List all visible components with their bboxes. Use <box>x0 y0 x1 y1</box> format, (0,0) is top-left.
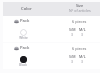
staticText: 3 <box>71 59 73 64</box>
staticText: 3 <box>71 32 73 37</box>
staticText: S/M <box>69 54 76 59</box>
staticText: 3 <box>81 32 83 37</box>
staticText: Color <box>21 6 32 12</box>
staticText: 6 pieces <box>72 46 87 51</box>
staticText: M/L <box>79 54 86 59</box>
button[interactable]: Pack <box>3 16 100 42</box>
staticText: Pack <box>20 45 30 51</box>
staticText: Black <box>19 63 27 67</box>
staticText: White <box>19 36 28 40</box>
staticText: S/M <box>69 27 76 32</box>
staticText: 3 <box>81 59 83 64</box>
button[interactable]: Pack <box>3 43 100 69</box>
staticText: N° of articles <box>69 8 91 13</box>
staticText: 6 pieces <box>72 19 87 24</box>
staticText: Size <box>76 3 84 8</box>
staticText: Pack <box>20 18 30 24</box>
staticText: M/L <box>79 27 86 32</box>
